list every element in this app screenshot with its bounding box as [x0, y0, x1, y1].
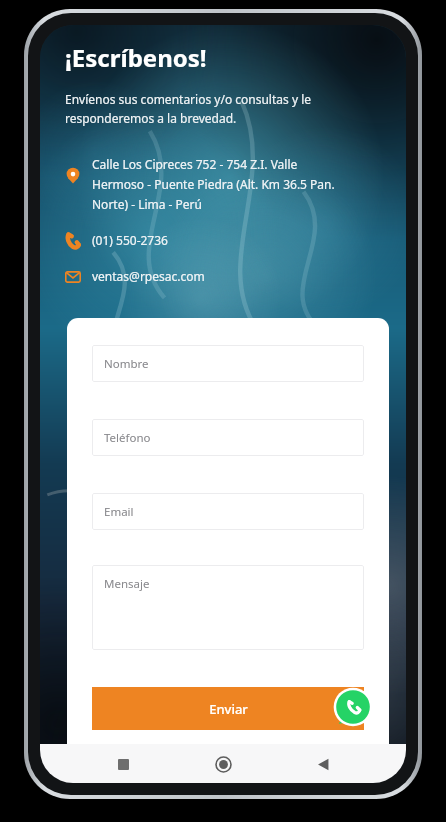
other: Dirección	[65, 168, 81, 184]
button[interactable]: Enviar	[92, 687, 364, 730]
button[interactable]: Correo	[65, 266, 384, 287]
staticText: ¡Escríbenos!	[65, 41, 207, 74]
staticText: (01) 550-2736	[92, 232, 168, 248]
button[interactable]: Teléfono	[65, 230, 384, 251]
staticText: Calle Los Cipreces 752 - 754 Z.I. Valle …	[92, 156, 335, 212]
button[interactable]: Teléfono	[92, 419, 364, 456]
staticText: ventas@rpesac.com	[92, 268, 205, 284]
staticText: Envíenos sus comentarios y/o consultas y…	[65, 91, 311, 126]
staticText: Nombre	[104, 356, 149, 372]
button[interactable]: Recientes	[106, 747, 140, 781]
button[interactable]: Mensaje	[92, 565, 364, 650]
button[interactable]: Dirección	[65, 154, 384, 214]
button[interactable]: WhatsApp	[332, 686, 374, 728]
other: Correo	[65, 269, 81, 285]
button[interactable]: Atrás	[306, 747, 340, 781]
button[interactable]: Email	[92, 493, 364, 530]
staticText: Email	[104, 504, 134, 520]
staticText: Mensaje	[104, 576, 150, 592]
button[interactable]: Nombre	[92, 345, 364, 382]
staticText: Teléfono	[104, 430, 151, 446]
button[interactable]: Inicio	[206, 747, 240, 781]
other: Teléfono	[65, 233, 81, 249]
staticText: Enviar	[209, 700, 248, 718]
